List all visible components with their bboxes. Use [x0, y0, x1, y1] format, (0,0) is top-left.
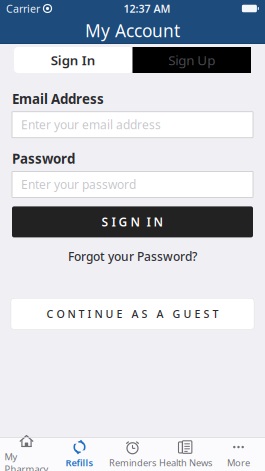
button[interactable]: S I G N I N	[12, 206, 253, 237]
staticText: Email Address	[12, 90, 104, 108]
button[interactable]: Reminders	[106, 437, 159, 470]
button[interactable]: Enter your password	[12, 171, 253, 197]
staticText: 12:37 AM	[123, 1, 170, 16]
staticText: Forgot your Password?	[68, 248, 197, 264]
button[interactable]: Sign Up	[132, 47, 251, 73]
staticText: My Account	[85, 19, 180, 42]
staticText: S I G N I N	[101, 214, 163, 230]
staticText: Refills	[65, 457, 93, 469]
button[interactable]: Refills	[53, 437, 106, 470]
button[interactable]: Enter your email address	[12, 112, 253, 138]
staticText: Health News	[159, 457, 212, 469]
button[interactable]: Sign In	[14, 47, 132, 73]
button[interactable]: More	[212, 437, 265, 470]
button[interactable]: My Pharmacy	[0, 437, 53, 470]
button[interactable]: Forgot your Password?	[0, 249, 265, 263]
staticText: Enter your email address	[21, 117, 161, 133]
staticText: C O N T I N U E A S A G U E S T	[46, 307, 218, 321]
staticText: Sign In	[51, 51, 96, 69]
button[interactable]: C O N T I N U E A S A G U E S T	[11, 298, 254, 329]
staticText: Reminders	[109, 457, 156, 469]
staticText: Sign Up	[168, 51, 215, 69]
staticText: Password	[12, 150, 75, 167]
staticText: Enter your password	[21, 176, 136, 192]
staticText: Carrier	[6, 1, 40, 16]
staticText: More	[227, 457, 250, 469]
button[interactable]: Health News	[159, 437, 212, 470]
staticText: My Pharmacy	[4, 450, 48, 471]
